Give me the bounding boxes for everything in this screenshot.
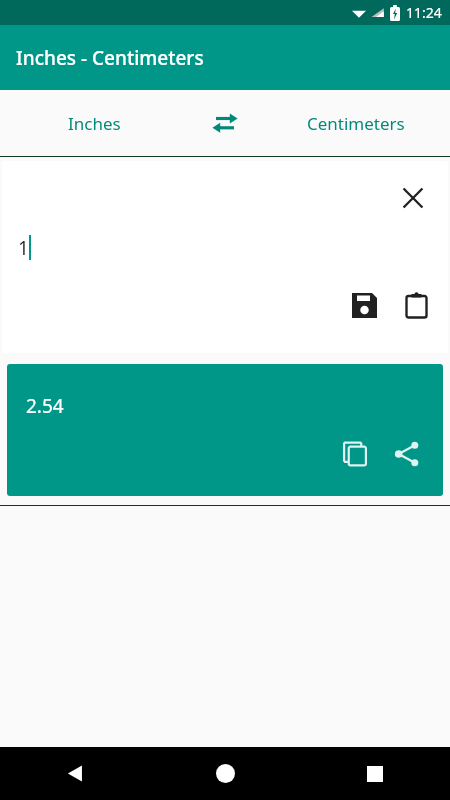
staticText: Inches - Centimeters (16, 45, 204, 71)
button[interactable]: Back (0, 747, 150, 800)
staticText: 1 (18, 235, 29, 261)
staticText: Centimeters (307, 112, 405, 135)
button[interactable]: Paste (394, 283, 438, 327)
staticText: 11:24 (406, 3, 442, 22)
button[interactable]: Swap units (188, 90, 262, 156)
button[interactable]: Centimeters (262, 90, 450, 156)
button[interactable]: 2.54 (7, 364, 443, 496)
button[interactable]: Home (150, 747, 300, 800)
button[interactable]: Share (385, 432, 429, 476)
button[interactable]: Copy (333, 432, 377, 476)
button[interactable]: Save (342, 283, 386, 327)
staticText: 2.54 (26, 393, 64, 419)
button[interactable]: Inches (0, 90, 188, 156)
button[interactable]: Recents (300, 747, 450, 800)
button[interactable]: Clear (392, 177, 434, 219)
staticText: Inches (68, 112, 121, 135)
